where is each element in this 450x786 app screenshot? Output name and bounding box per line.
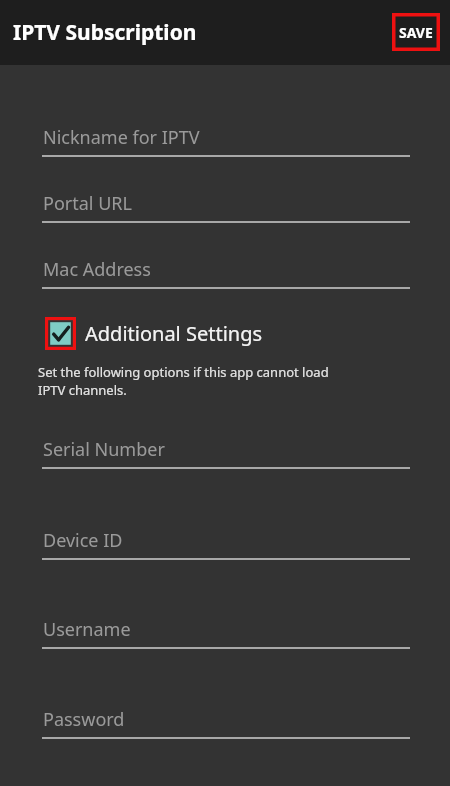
- button[interactable]: Mac Address: [0, 223, 450, 289]
- button[interactable]: Save: [392, 13, 440, 51]
- staticText: Device ID: [43, 528, 123, 553]
- staticText: Serial Number: [43, 437, 165, 462]
- staticText: Username: [43, 617, 131, 642]
- staticText: SAVE: [399, 23, 433, 42]
- staticText: Additional Settings: [85, 320, 263, 347]
- button[interactable]: Portal URL: [0, 157, 450, 223]
- staticText: Nickname for IPTV: [43, 125, 200, 150]
- staticText: IPTV Subscription: [13, 18, 197, 47]
- staticText: Mac Address: [43, 257, 151, 282]
- staticText: Password: [43, 707, 125, 732]
- staticText: Portal URL: [43, 191, 132, 216]
- button[interactable]: Additional Settings: [0, 315, 450, 351]
- button[interactable]: Username: [0, 560, 450, 649]
- button[interactable]: Nickname for IPTV: [0, 65, 450, 157]
- button[interactable]: Device ID: [0, 469, 450, 560]
- button[interactable]: Serial Number: [0, 399, 450, 469]
- staticText: Set the following options if this app ca…: [38, 363, 329, 399]
- button[interactable]: Password: [0, 649, 450, 739]
